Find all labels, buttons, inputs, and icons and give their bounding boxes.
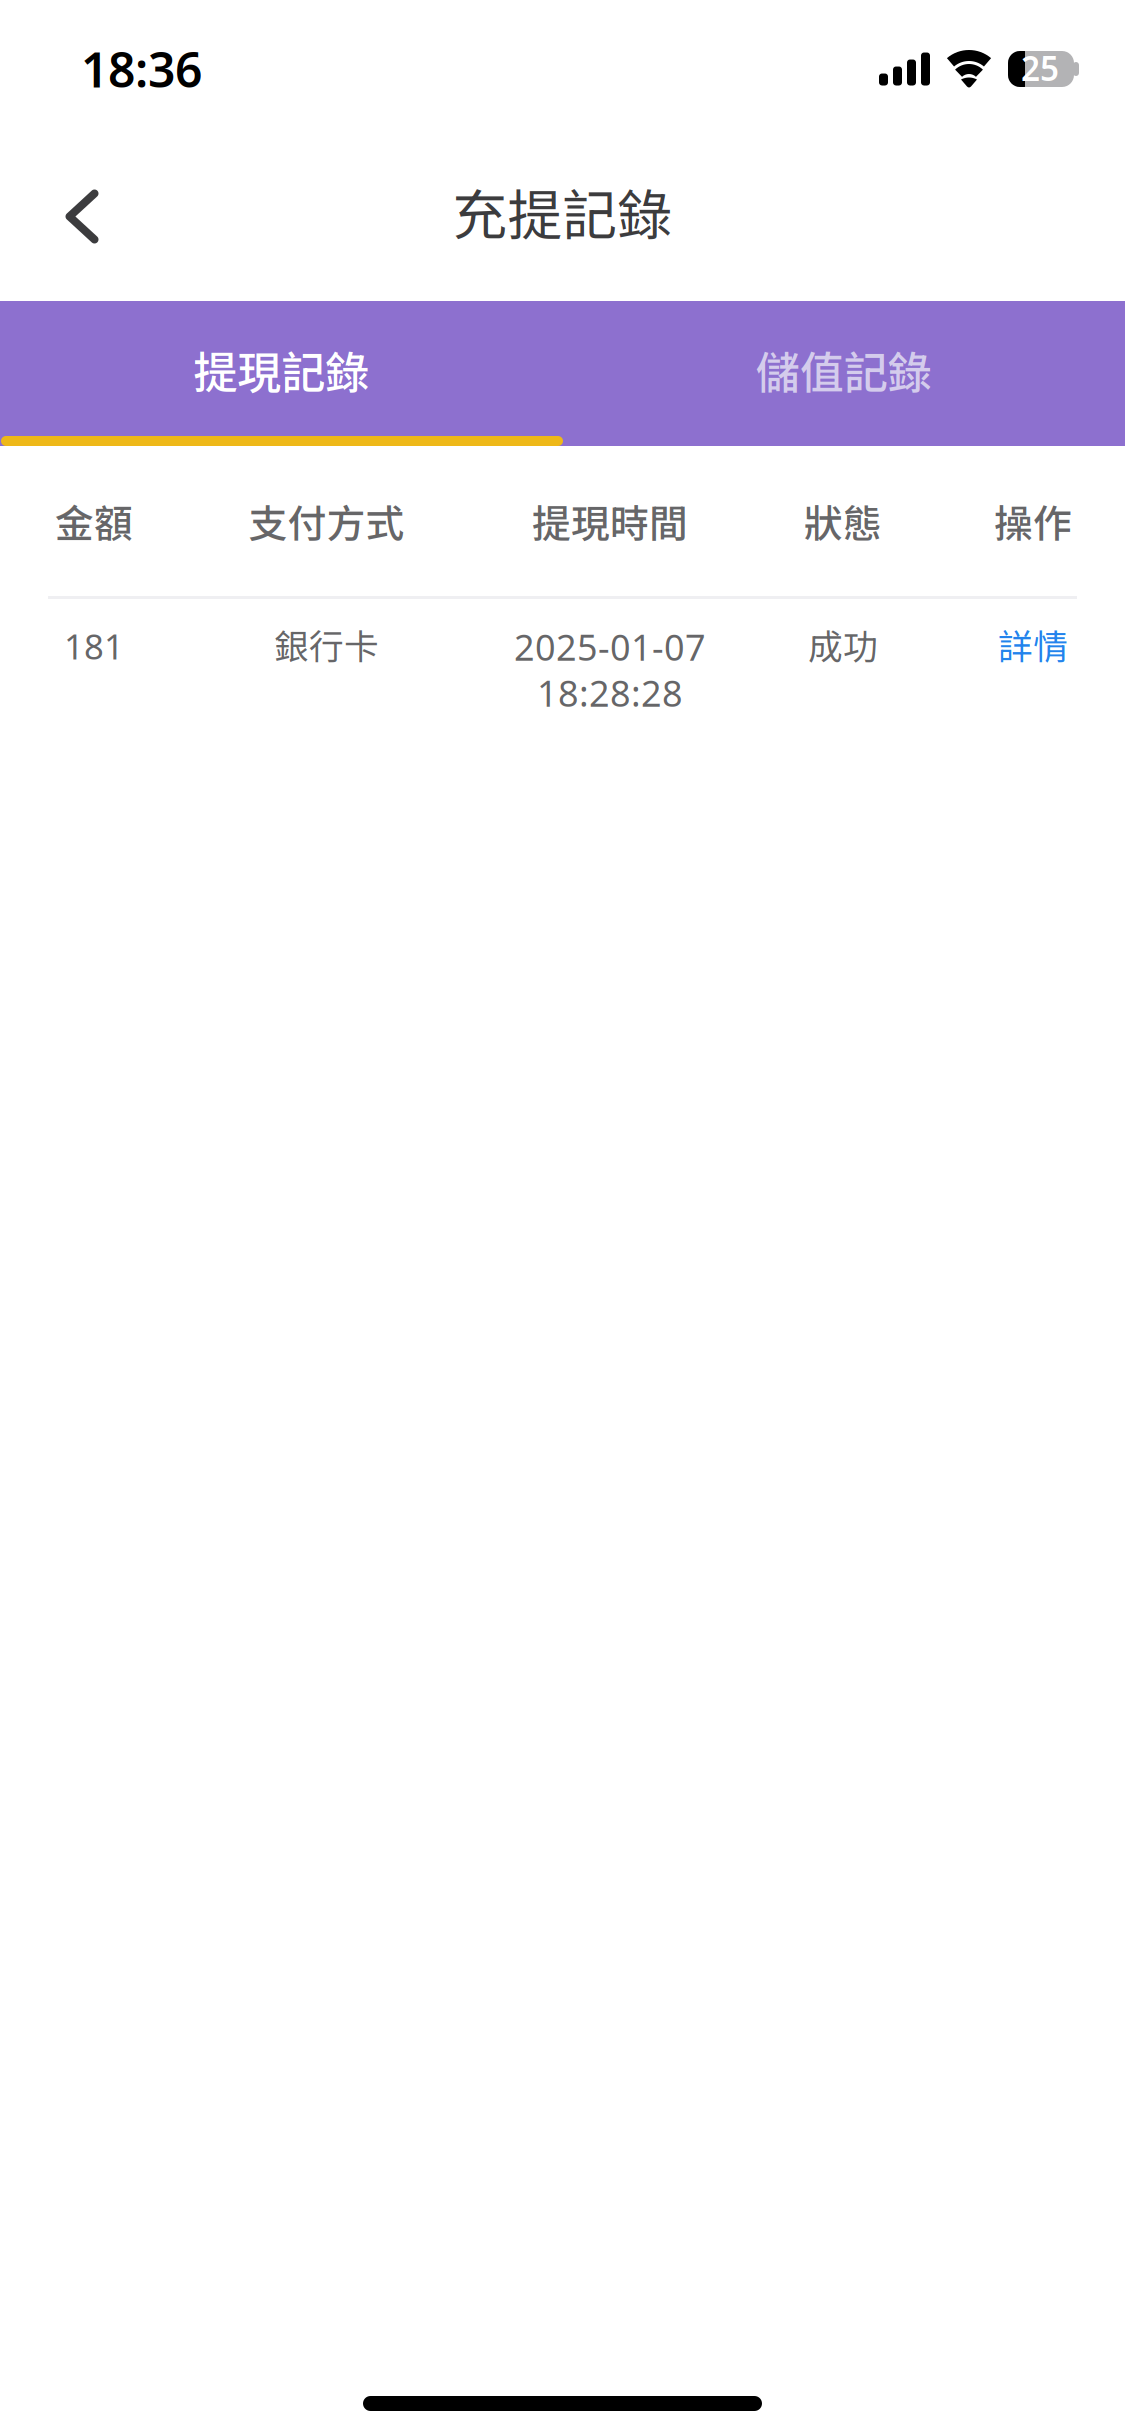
staticText: 18:28:28 — [537, 669, 683, 717]
staticText: 儲值記錄 — [756, 338, 932, 401]
staticText: 提現時間 — [532, 493, 688, 549]
staticText: 181 — [64, 623, 124, 669]
staticText: 銀行卡 — [274, 619, 379, 669]
staticText: 金額 — [55, 493, 133, 549]
button[interactable]: 儲值記錄 — [562, 301, 1125, 446]
staticText: 25 — [1021, 46, 1059, 90]
staticText: 支付方式 — [248, 493, 404, 549]
button[interactable]: Back — [34, 168, 130, 264]
staticText: 成功 — [808, 619, 878, 669]
button[interactable]: 提現記錄 — [0, 301, 562, 446]
staticText: 18:36 — [81, 37, 202, 101]
staticText: 充提記錄 — [452, 172, 672, 251]
staticText: 2025-01-07 — [514, 623, 706, 671]
button[interactable]: 詳情 — [931, 623, 1125, 699]
staticText: 操作 — [994, 493, 1072, 549]
staticText: 詳情 — [998, 619, 1068, 669]
staticText: 狀態 — [804, 493, 882, 549]
staticText: 提現記錄 — [193, 338, 369, 401]
